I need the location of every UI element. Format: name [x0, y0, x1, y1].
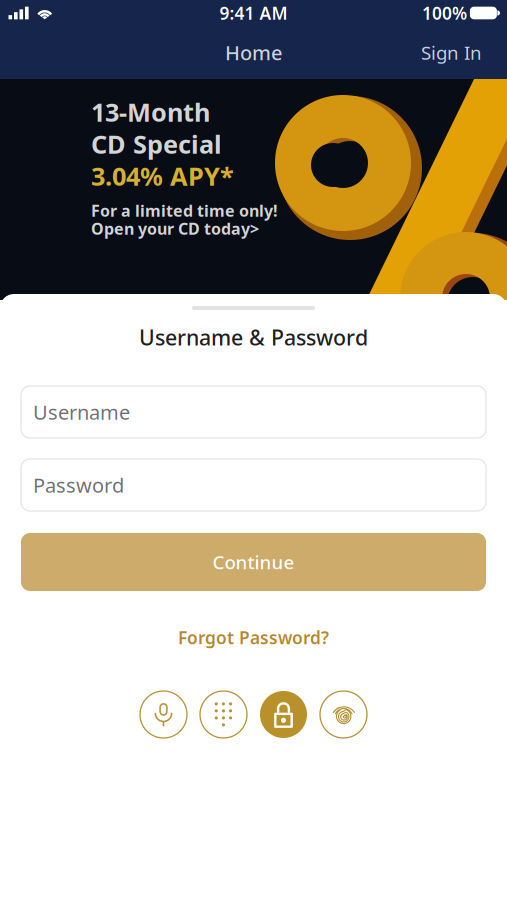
staticText: Password: [33, 472, 124, 498]
staticText: Home: [225, 39, 282, 66]
staticText: Open your CD today>: [91, 218, 259, 239]
button[interactable]: Home: [0, 39, 507, 66]
staticText: 100%: [422, 1, 467, 24]
button[interactable]: Voice sign in: [140, 691, 187, 738]
button[interactable]: Passcode: [260, 691, 307, 738]
staticText: Username: [33, 399, 130, 425]
staticText: Forgot Password?: [178, 626, 329, 649]
button[interactable]: Touch ID: [320, 691, 367, 738]
staticText: CD Special: [91, 127, 222, 161]
button[interactable]: Username: [21, 386, 486, 438]
staticText: Username & Password: [139, 323, 368, 351]
button[interactable]: Password: [21, 459, 486, 511]
button[interactable]: Sign In: [421, 40, 482, 65]
button[interactable]: Continue: [21, 533, 486, 591]
button[interactable]: Forgot Password?: [178, 626, 329, 644]
staticText: 9:41 AM: [219, 1, 287, 24]
staticText: 3.04% APY*: [91, 159, 234, 193]
button[interactable]: Keypad: [200, 691, 247, 738]
staticText: For a limited time only!: [91, 200, 278, 221]
staticText: 13-Month: [91, 95, 210, 129]
staticText: Sign In: [421, 40, 482, 65]
staticText: Continue: [212, 550, 294, 574]
